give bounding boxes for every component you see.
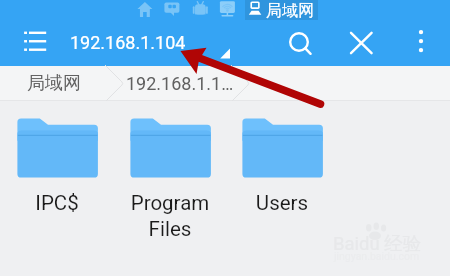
button[interactable]: 局域网 — [20, 66, 88, 101]
staticText: Users — [228, 191, 336, 215]
staticText: 192.168.1.1… — [126, 73, 234, 94]
button[interactable]: IPC$ — [0, 101, 113, 251]
staticText: Baidu 经验 — [333, 232, 422, 255]
button[interactable]: Users — [225, 101, 338, 251]
button[interactable]: Show list — [13, 24, 57, 64]
button[interactable]: Program Files — [113, 101, 226, 251]
staticText: 局域网 — [27, 72, 81, 95]
staticText: IPC$ — [3, 191, 111, 215]
staticText: 局域网 — [266, 1, 314, 21]
staticText: Program Files — [116, 191, 224, 241]
button[interactable]: Search — [277, 24, 321, 64]
button[interactable]: 192.168.1.1… — [125, 66, 234, 101]
button[interactable]: Close — [338, 24, 382, 64]
button[interactable]: 192.168.1.104 — [70, 32, 186, 53]
button[interactable]: More options — [399, 24, 443, 64]
